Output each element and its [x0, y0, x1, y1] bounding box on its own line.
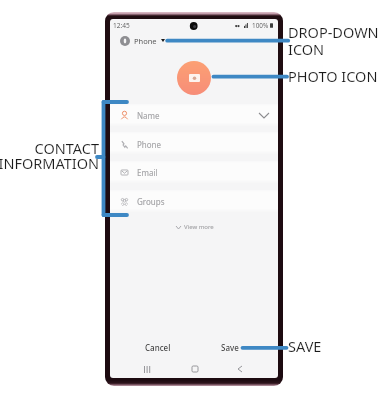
staticText: 12:45 — [113, 21, 130, 30]
staticText: Groups — [137, 196, 165, 207]
staticText: SAVE — [288, 336, 322, 356]
button[interactable]: Cancel — [128, 339, 188, 355]
staticText: Cancel — [145, 342, 171, 353]
button[interactable]: Name — [110, 101, 278, 129]
staticText: Email — [137, 167, 158, 178]
staticText: Phone — [137, 139, 162, 150]
button[interactable]: Groups — [110, 187, 278, 215]
button[interactable]: Back — [230, 359, 250, 378]
button[interactable]: Home — [185, 359, 205, 378]
button[interactable]: Add photo — [177, 61, 211, 95]
button[interactable]: View more — [176, 222, 214, 232]
staticText: CONTACT INFORMATION — [0, 138, 99, 173]
staticText: Name — [137, 110, 160, 121]
staticText: Save — [221, 342, 239, 353]
staticText: 100% — [252, 21, 269, 30]
staticText: Phone — [134, 36, 157, 46]
button[interactable]: Email — [110, 158, 278, 186]
staticText: PHOTO ICON — [288, 66, 378, 86]
staticText: View more — [184, 223, 214, 231]
button[interactable]: Recents — [137, 359, 157, 378]
staticText: DROP-DOWN ICON — [288, 22, 379, 59]
button[interactable]: Phone — [110, 32, 278, 49]
button[interactable]: Phone — [110, 130, 278, 158]
button[interactable]: Save — [212, 339, 248, 355]
